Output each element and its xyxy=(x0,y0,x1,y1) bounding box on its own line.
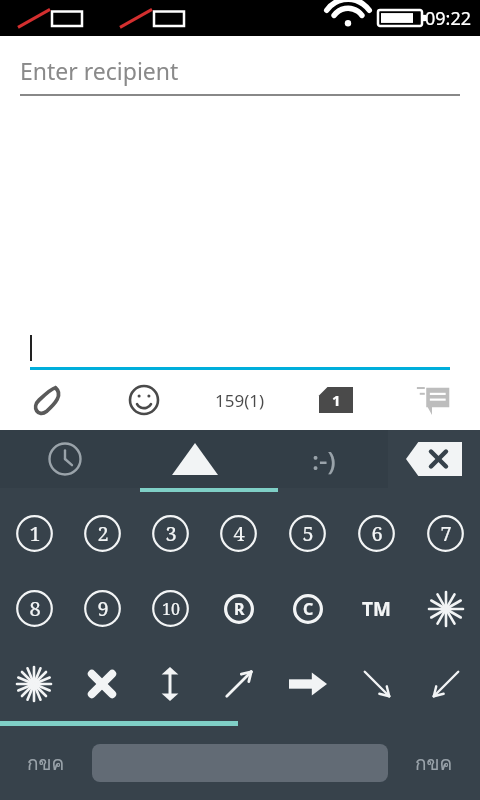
staticText: 10 xyxy=(162,598,180,620)
staticText: 3 xyxy=(165,520,177,547)
button[interactable]: Emoticons xyxy=(259,430,388,488)
button[interactable]: Attach xyxy=(0,370,96,430)
button[interactable]: downright xyxy=(342,646,411,721)
staticText: 8 xyxy=(29,595,41,622)
staticText: 1 xyxy=(29,520,41,547)
button[interactable]: 159(1) xyxy=(192,370,288,430)
button[interactable]: Backspace xyxy=(388,430,480,488)
button[interactable]: Send xyxy=(384,370,480,430)
staticText: 1 xyxy=(332,390,341,410)
button[interactable]: Emoji xyxy=(96,370,192,430)
button[interactable]: C xyxy=(273,571,342,646)
button[interactable]: SIM 1 xyxy=(288,370,384,430)
staticText: 4 xyxy=(233,520,245,547)
button[interactable]: 5 xyxy=(273,496,342,571)
staticText: Enter recipient xyxy=(20,55,179,86)
staticText: 6 xyxy=(371,520,383,547)
button[interactable]: upright xyxy=(204,646,273,721)
button[interactable]: 6 xyxy=(342,496,411,571)
button[interactable]: 8 xyxy=(0,571,68,646)
button[interactable]: 7 xyxy=(411,496,480,571)
staticText: TM xyxy=(362,596,391,622)
staticText: กขค xyxy=(27,748,65,778)
button[interactable]: กขค xyxy=(0,726,92,800)
button[interactable]: xmark xyxy=(68,646,136,721)
staticText: 159(1) xyxy=(215,389,265,412)
button[interactable]: 9 xyxy=(68,571,136,646)
button[interactable]: R xyxy=(204,571,273,646)
button[interactable]: 1 xyxy=(0,496,68,571)
button[interactable]: 2 xyxy=(68,496,136,571)
staticText: :-) xyxy=(312,442,336,477)
staticText: 9 xyxy=(97,595,109,622)
button[interactable]: 3 xyxy=(136,496,204,571)
button[interactable]: Enter recipient xyxy=(20,50,460,90)
button[interactable]: TM xyxy=(342,571,411,646)
button[interactable]: downleft xyxy=(411,646,480,721)
staticText: R xyxy=(234,598,245,620)
button[interactable]: 4 xyxy=(204,496,273,571)
button[interactable]: star6 xyxy=(411,571,480,646)
button[interactable]: กขค xyxy=(388,726,480,800)
button[interactable]: star8 xyxy=(0,646,68,721)
staticText: 09:22 xyxy=(425,6,472,31)
button[interactable]: right xyxy=(273,646,342,721)
staticText: 5 xyxy=(302,520,314,547)
button[interactable]: Recent xyxy=(0,430,130,488)
button[interactable] xyxy=(30,329,450,367)
button[interactable]: 10 xyxy=(136,571,204,646)
button[interactable]: Symbols xyxy=(130,430,259,488)
button[interactable]: updown xyxy=(136,646,204,721)
staticText: 2 xyxy=(97,520,109,547)
staticText: กขค xyxy=(415,748,453,778)
staticText: 7 xyxy=(440,520,452,547)
staticText: C xyxy=(303,598,314,620)
